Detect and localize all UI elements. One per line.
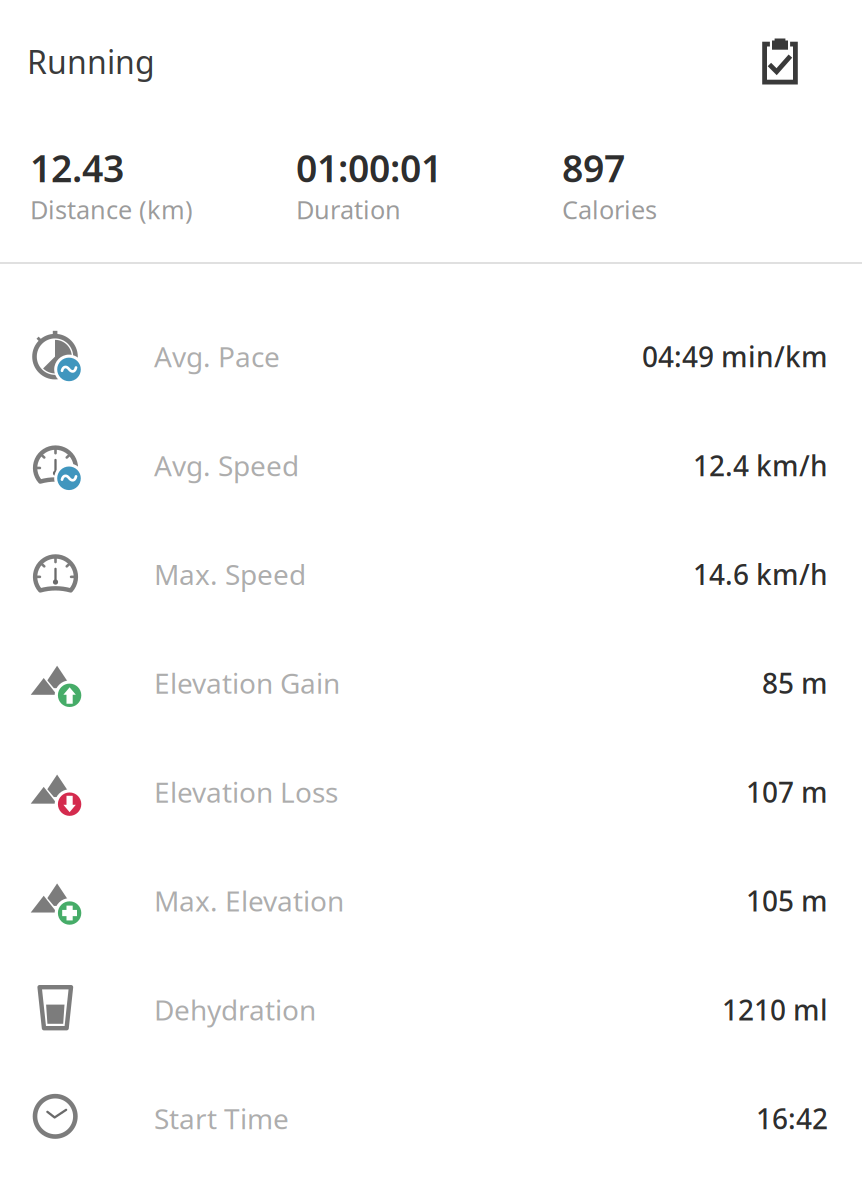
staticText: Duration (296, 193, 401, 226)
staticText: 105 m (746, 882, 828, 919)
staticText: 04:49 min/km (642, 338, 828, 375)
staticText: Max. Elevation (154, 882, 344, 919)
staticText: Running (27, 40, 155, 83)
staticText: 16:42 (756, 1100, 828, 1137)
staticText: 14.6 km/h (693, 556, 828, 593)
staticText: Avg. Pace (154, 338, 280, 375)
staticText: Max. Speed (154, 556, 306, 593)
button[interactable]: Max. Elevation (0, 846, 862, 955)
button[interactable]: Elevation Gain (0, 629, 862, 737)
button[interactable]: Avg. Speed (0, 411, 862, 520)
button[interactable]: Elevation Loss (0, 737, 862, 846)
button[interactable]: Avg. Pace (0, 302, 862, 411)
button[interactable]: Max. Speed (0, 520, 862, 629)
staticText: 107 m (746, 773, 828, 810)
button[interactable]: Workout details (750, 26, 810, 96)
button[interactable]: Start Time (0, 1064, 862, 1173)
staticText: 12.4 km/h (693, 447, 828, 484)
staticText: Start Time (154, 1100, 289, 1137)
staticText: Calories (562, 193, 657, 226)
button[interactable]: Dehydration (0, 955, 862, 1064)
staticText: Elevation Loss (154, 773, 338, 810)
staticText: 12.43 (30, 143, 124, 193)
staticText: 897 (562, 143, 625, 193)
staticText: Distance (km) (30, 193, 193, 226)
staticText: Dehydration (154, 991, 316, 1028)
staticText: 85 m (762, 664, 828, 702)
staticText: Avg. Speed (154, 447, 299, 484)
staticText: 1210 ml (722, 991, 828, 1028)
staticText: 01:00:01 (296, 143, 442, 193)
staticText: Elevation Gain (154, 664, 340, 702)
